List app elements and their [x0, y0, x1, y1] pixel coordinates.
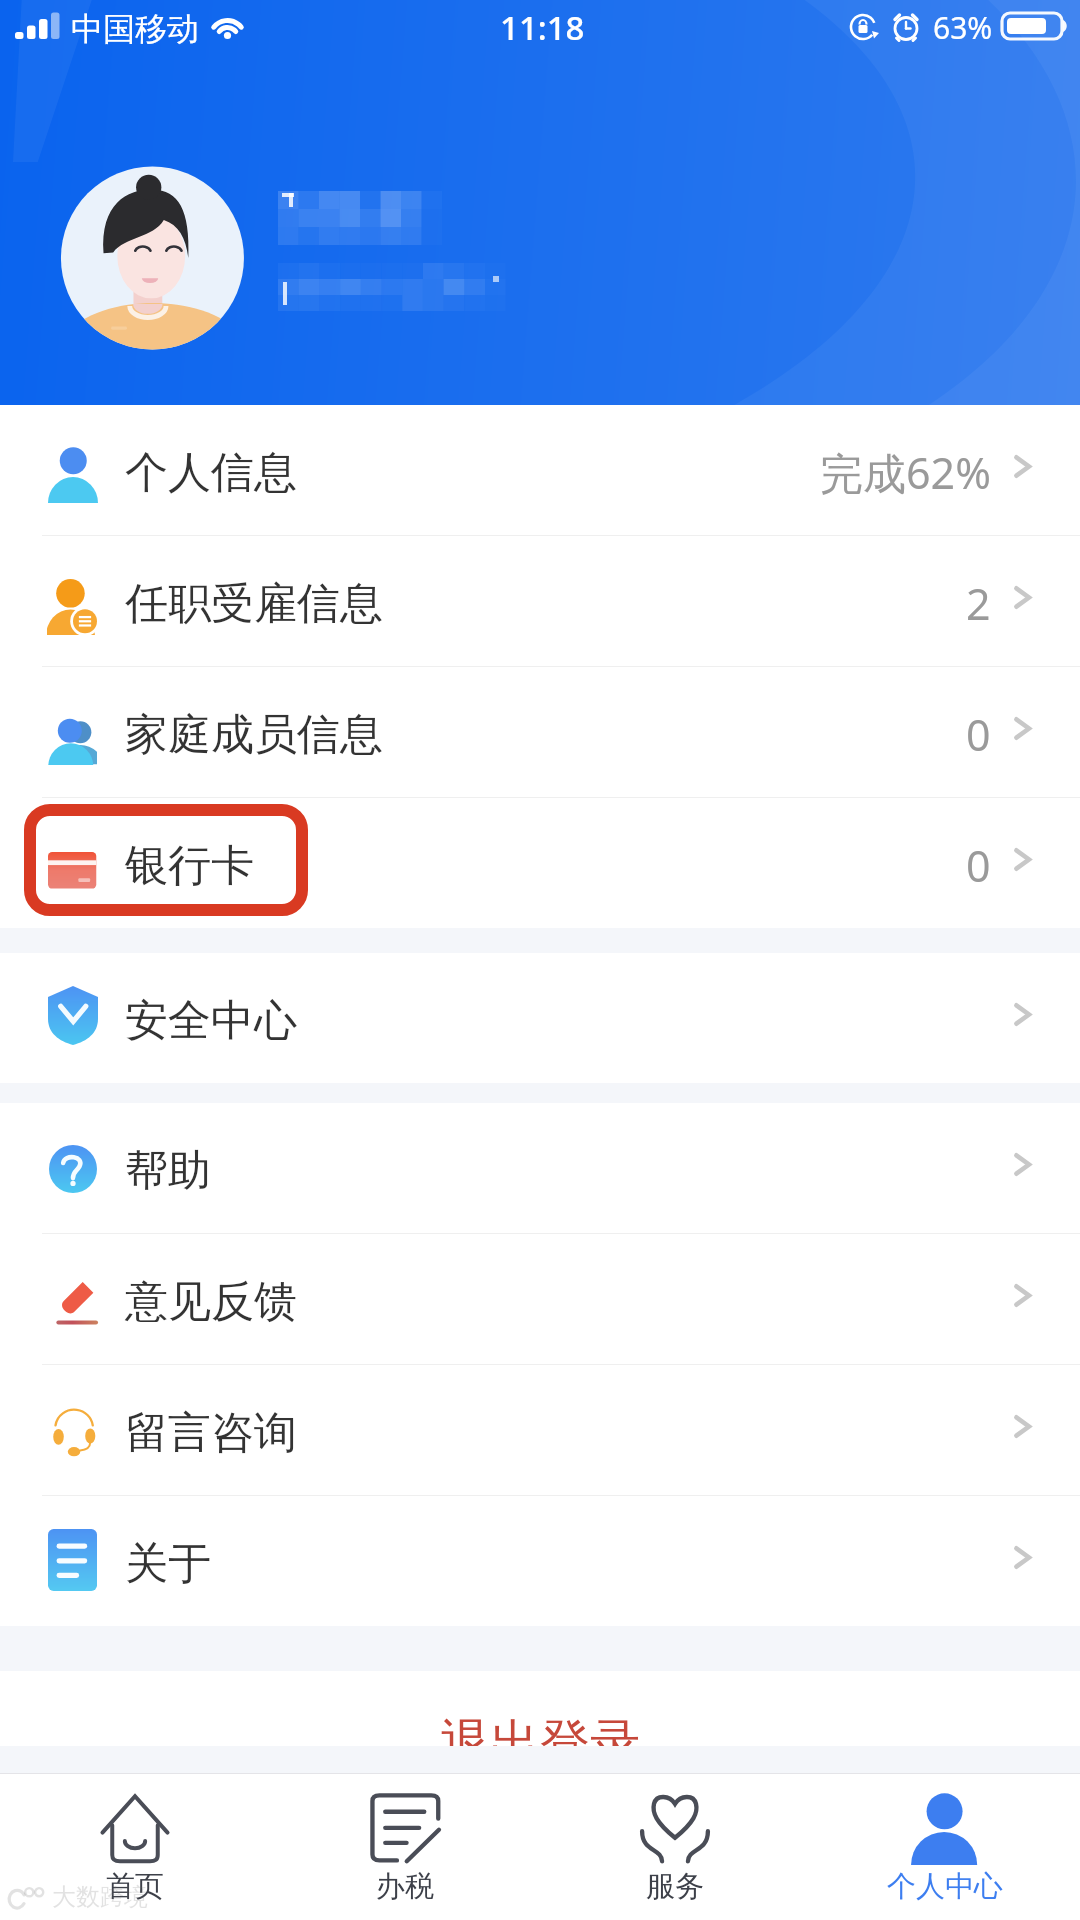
- button[interactable]: 首页: [0, 1774, 270, 1920]
- staticText: 首页: [106, 1868, 164, 1905]
- button[interactable]: 帮助: [0, 1103, 1080, 1233]
- staticText: 办税: [376, 1868, 434, 1905]
- button[interactable]: 个人信息: [0, 405, 1080, 535]
- staticText: 0: [966, 705, 991, 764]
- button[interactable]: 安全中心: [0, 953, 1080, 1083]
- button[interactable]: 银行卡: [0, 798, 1080, 928]
- staticText: 大数跨境: [52, 1882, 148, 1912]
- staticText: 安全中心: [125, 994, 297, 1048]
- staticText: 个人中心: [887, 1868, 1003, 1905]
- button[interactable]: 关于: [0, 1496, 1080, 1626]
- staticText: 完成62%: [820, 443, 991, 502]
- staticText: 个人信息: [125, 446, 297, 500]
- staticText: 11:18: [500, 5, 585, 50]
- button[interactable]: 任职受雇信息: [0, 536, 1080, 666]
- staticText: 家庭成员信息: [125, 708, 383, 762]
- button[interactable]: 个人中心: [810, 1774, 1080, 1920]
- button[interactable]: 退出登录: [0, 1671, 1080, 1746]
- staticText: 63%: [933, 7, 993, 48]
- staticText: 中国移动: [71, 9, 199, 49]
- staticText: 服务: [646, 1868, 704, 1905]
- staticText: 2: [966, 574, 991, 633]
- staticText: 留言咨询: [125, 1406, 297, 1460]
- staticText: 退出登录: [440, 1712, 640, 1746]
- button[interactable]: 办税: [270, 1774, 540, 1920]
- staticText: 任职受雇信息: [125, 577, 383, 631]
- button[interactable]: 留言咨询: [0, 1365, 1080, 1495]
- button[interactable]: 服务: [540, 1774, 810, 1920]
- staticText: 意见反馈: [125, 1275, 297, 1329]
- staticText: 银行卡: [125, 839, 254, 893]
- button[interactable]: 意见反馈: [0, 1234, 1080, 1364]
- staticText: 关于: [125, 1537, 211, 1591]
- staticText: 帮助: [125, 1144, 211, 1198]
- staticText: 0: [966, 836, 991, 895]
- button[interactable]: 家庭成员信息: [0, 667, 1080, 797]
